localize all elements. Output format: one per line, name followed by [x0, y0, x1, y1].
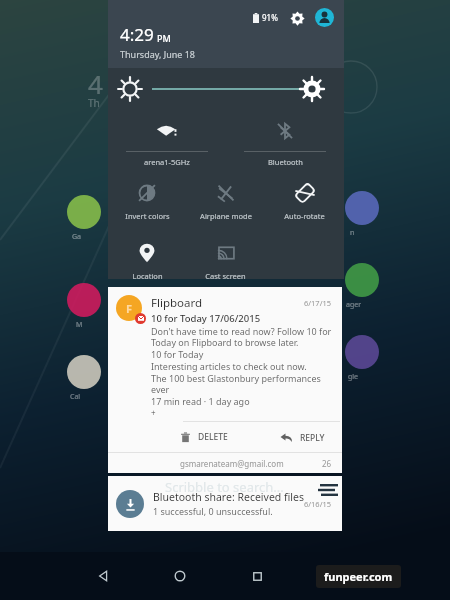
staticText: Flipboard [151, 295, 304, 311]
staticText: 6/17/15 [304, 298, 332, 308]
staticText: Interesting articles to check out now. [151, 360, 307, 372]
button[interactable]: User profile [315, 8, 334, 27]
button[interactable]: Invert colors [108, 172, 186, 232]
staticText: F [126, 301, 133, 316]
staticText: Auto-rotate [284, 211, 325, 221]
staticText: REPLY [300, 432, 325, 444]
staticText: gle [348, 372, 359, 382]
staticText: 4 [88, 66, 103, 101]
staticText: Scribble to search... [165, 478, 284, 496]
staticText: 17 min read · 1 day ago [151, 395, 250, 407]
staticText: Bluetooth share: Received files [153, 490, 304, 504]
staticText: + [151, 407, 156, 418]
staticText: gsmarenateam@gmail.com [180, 458, 322, 469]
staticText: 10 for Today [151, 348, 204, 360]
button[interactable]: Cast screen [186, 232, 265, 279]
staticText: Cast screen [205, 271, 246, 279]
staticText: Don't have time to read now? Follow 10 f… [151, 325, 332, 348]
staticText: Location [132, 271, 163, 279]
other: Battery [253, 13, 259, 23]
staticText: 6/16/15 [304, 499, 332, 509]
staticText: M [76, 320, 83, 330]
button[interactable]: Auto-rotate [265, 172, 344, 232]
staticText: Ga [72, 232, 82, 242]
staticText: Thursday, June 18 [120, 48, 196, 60]
staticText: 4:29 [120, 23, 154, 46]
staticText: 26 [322, 458, 332, 469]
button[interactable]: Bluetooth [226, 110, 344, 172]
button[interactable]: Settings [288, 9, 306, 27]
button[interactable]: arena1-5GHz [108, 110, 226, 172]
button[interactable]: Location [108, 232, 186, 279]
staticText: 1 successful, 0 unsuccessful. [153, 505, 273, 517]
button[interactable]: Back [86, 559, 120, 593]
staticText: 10 for Today 17/06/2015 [151, 312, 261, 325]
staticText: The 100 best Glastonbury performances ev… [151, 372, 332, 395]
button[interactable]: Airplane mode [186, 172, 265, 232]
staticText: 91% [262, 12, 278, 23]
staticText: DELETE [198, 431, 228, 443]
button[interactable]: Recent apps [240, 559, 274, 593]
staticText: Th [88, 96, 100, 110]
staticText: Cal [70, 392, 81, 402]
button[interactable]: Brightness slider [108, 68, 344, 110]
staticText: PM [157, 32, 171, 44]
button[interactable]: F [108, 287, 342, 473]
staticText: n [350, 228, 355, 238]
staticText: ager [346, 300, 362, 310]
staticText: arena1-5GHz [144, 157, 190, 167]
staticText: funpeer.com [324, 569, 393, 584]
staticText: Bluetooth [268, 157, 303, 167]
button[interactable]: DELETE [180, 431, 228, 443]
button[interactable]: Home [163, 559, 197, 593]
button[interactable]: Bluetooth share: Received files [108, 476, 342, 531]
staticText: Airplane mode [200, 211, 252, 221]
staticText: Invert colors [125, 211, 170, 221]
button[interactable]: REPLY [280, 431, 325, 444]
